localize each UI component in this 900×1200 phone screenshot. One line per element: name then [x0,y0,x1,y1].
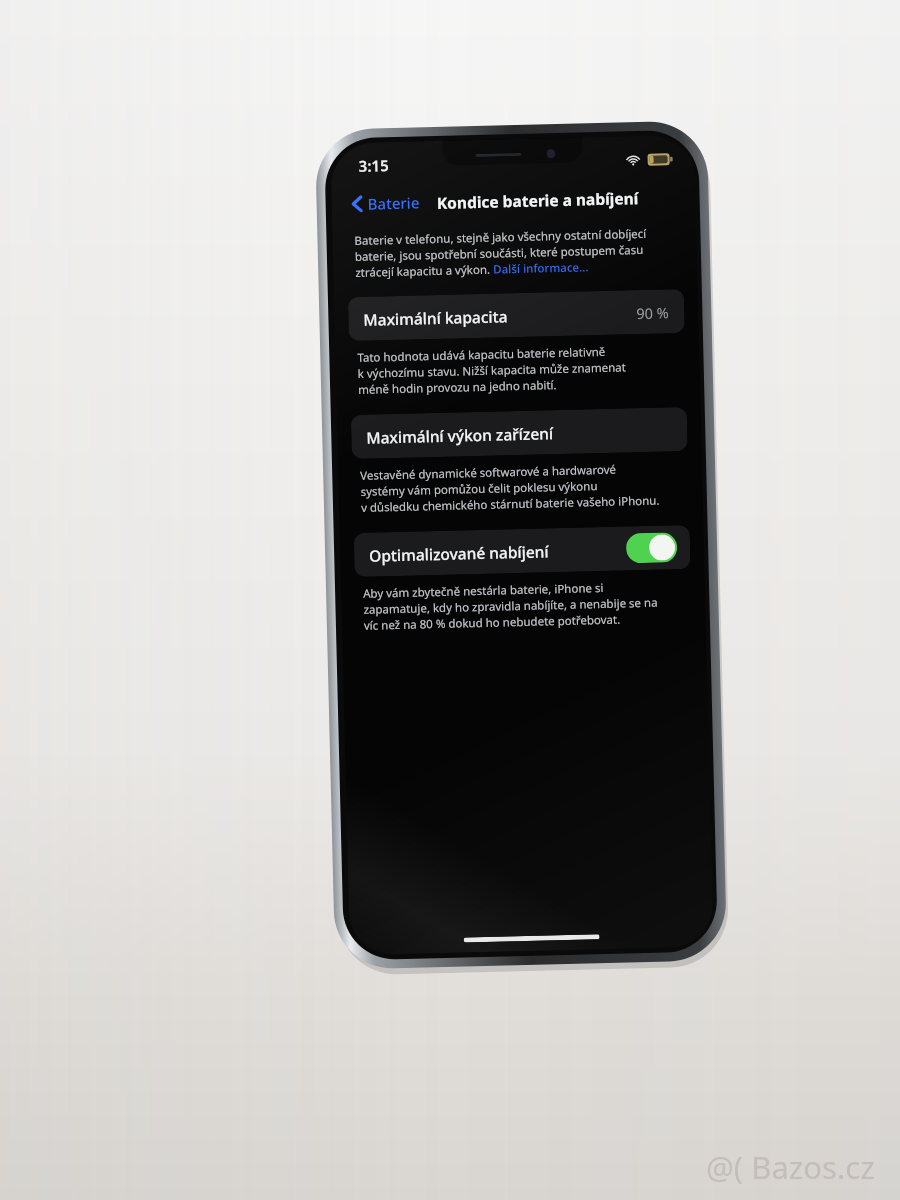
staticText: Kondice baterie a nabíjení [436,187,639,213]
button[interactable]: Maximální výkon zařízení [351,407,688,459]
staticText: víc než na 80 % dokud ho nebudete potřeb… [364,612,621,634]
staticText: Optimalizované nabíjení [369,538,626,566]
staticText: baterie, jsou spotřební součásti, které … [355,242,644,265]
button[interactable]: Optimalizované nabíjení toggle [626,532,677,563]
staticText: v důsledku chemického stárnutí baterie v… [361,493,660,516]
staticText: zapamatuje, kdy ho zpravidla nabíjíte, a… [363,595,659,618]
staticText: Další informace... [493,259,589,278]
staticText: Vestavěné dynamické softwarové a hardwar… [360,462,616,484]
staticText: @( Bazos.cz [706,1146,875,1188]
staticText: Baterie v telefonu, stejně jako všechny … [354,226,647,249]
staticText: 3:15 [358,155,389,176]
button[interactable]: Optimalizované nabíjení [354,525,691,577]
staticText: systémy vám pomůžou čelit poklesu výkonu [360,478,598,500]
staticText: Tato hodnota udává kapacitu baterie rela… [357,344,605,366]
staticText: Aby vám zbytečně nestárla baterie, iPhon… [363,580,604,602]
button[interactable]: Další informace... [493,259,589,278]
staticText: méně hodin provozu na jedno nabití. [358,377,557,398]
button[interactable]: Maximální kapacita [348,289,685,341]
staticText: Maximální kapacita [363,302,637,330]
staticText: 90 % [636,302,670,323]
button[interactable]: Back to Baterie [349,190,422,216]
staticText: Baterie [367,192,420,214]
staticText: Maximální výkon zařízení [366,419,672,448]
staticText: ztrácejí kapacitu a výkon. [355,262,493,281]
staticText: k výchozímu stavu. Nižší kapacita může z… [358,359,627,382]
